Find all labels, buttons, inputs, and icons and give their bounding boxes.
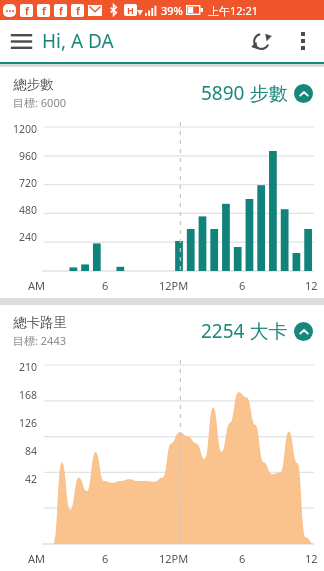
staticText: 480 xyxy=(19,203,38,217)
staticText: 168 xyxy=(19,388,38,402)
staticText: 42 xyxy=(25,472,38,486)
staticText: 960 xyxy=(19,149,38,163)
staticText: 5890 步數 xyxy=(201,80,288,106)
staticText: f xyxy=(59,4,63,17)
staticText: 2254 大卡 xyxy=(201,318,288,344)
staticText: 6 xyxy=(102,551,109,566)
staticText: 12 xyxy=(305,278,318,293)
staticText: 目標: 2443 xyxy=(13,333,66,348)
staticText: 39% xyxy=(161,3,183,18)
staticText: f xyxy=(42,4,46,17)
staticText: H xyxy=(127,4,134,16)
staticText: 6 xyxy=(102,278,109,293)
staticText: f xyxy=(25,4,29,17)
staticText: f xyxy=(76,4,80,17)
staticText: 240 xyxy=(19,230,38,244)
staticText: 12PM xyxy=(159,278,189,293)
staticText: AM xyxy=(28,278,46,293)
staticText: 1200 xyxy=(13,122,38,136)
button[interactable]: 總卡路里 xyxy=(0,305,324,357)
button[interactable]: Menu xyxy=(0,20,42,62)
staticText: 12 xyxy=(305,551,318,566)
staticText: Hi, A DA xyxy=(42,28,114,54)
staticText: 210 xyxy=(19,360,38,374)
staticText: 上午12:21 xyxy=(208,3,259,18)
button[interactable]: 總步數 xyxy=(0,67,324,119)
staticText: AM xyxy=(28,551,46,566)
staticText: 126 xyxy=(19,416,38,430)
staticText: 目標: 6000 xyxy=(13,95,66,110)
staticText: 6 xyxy=(239,278,246,293)
staticText: 12PM xyxy=(159,551,189,566)
staticText: 總卡路里 xyxy=(13,314,67,331)
button[interactable]: More options xyxy=(282,20,324,62)
staticText: 總步數 xyxy=(13,76,54,93)
staticText: 6 xyxy=(239,551,246,566)
staticText: 84 xyxy=(25,444,38,458)
staticText: 720 xyxy=(19,176,38,190)
button[interactable]: Refresh xyxy=(240,20,282,62)
